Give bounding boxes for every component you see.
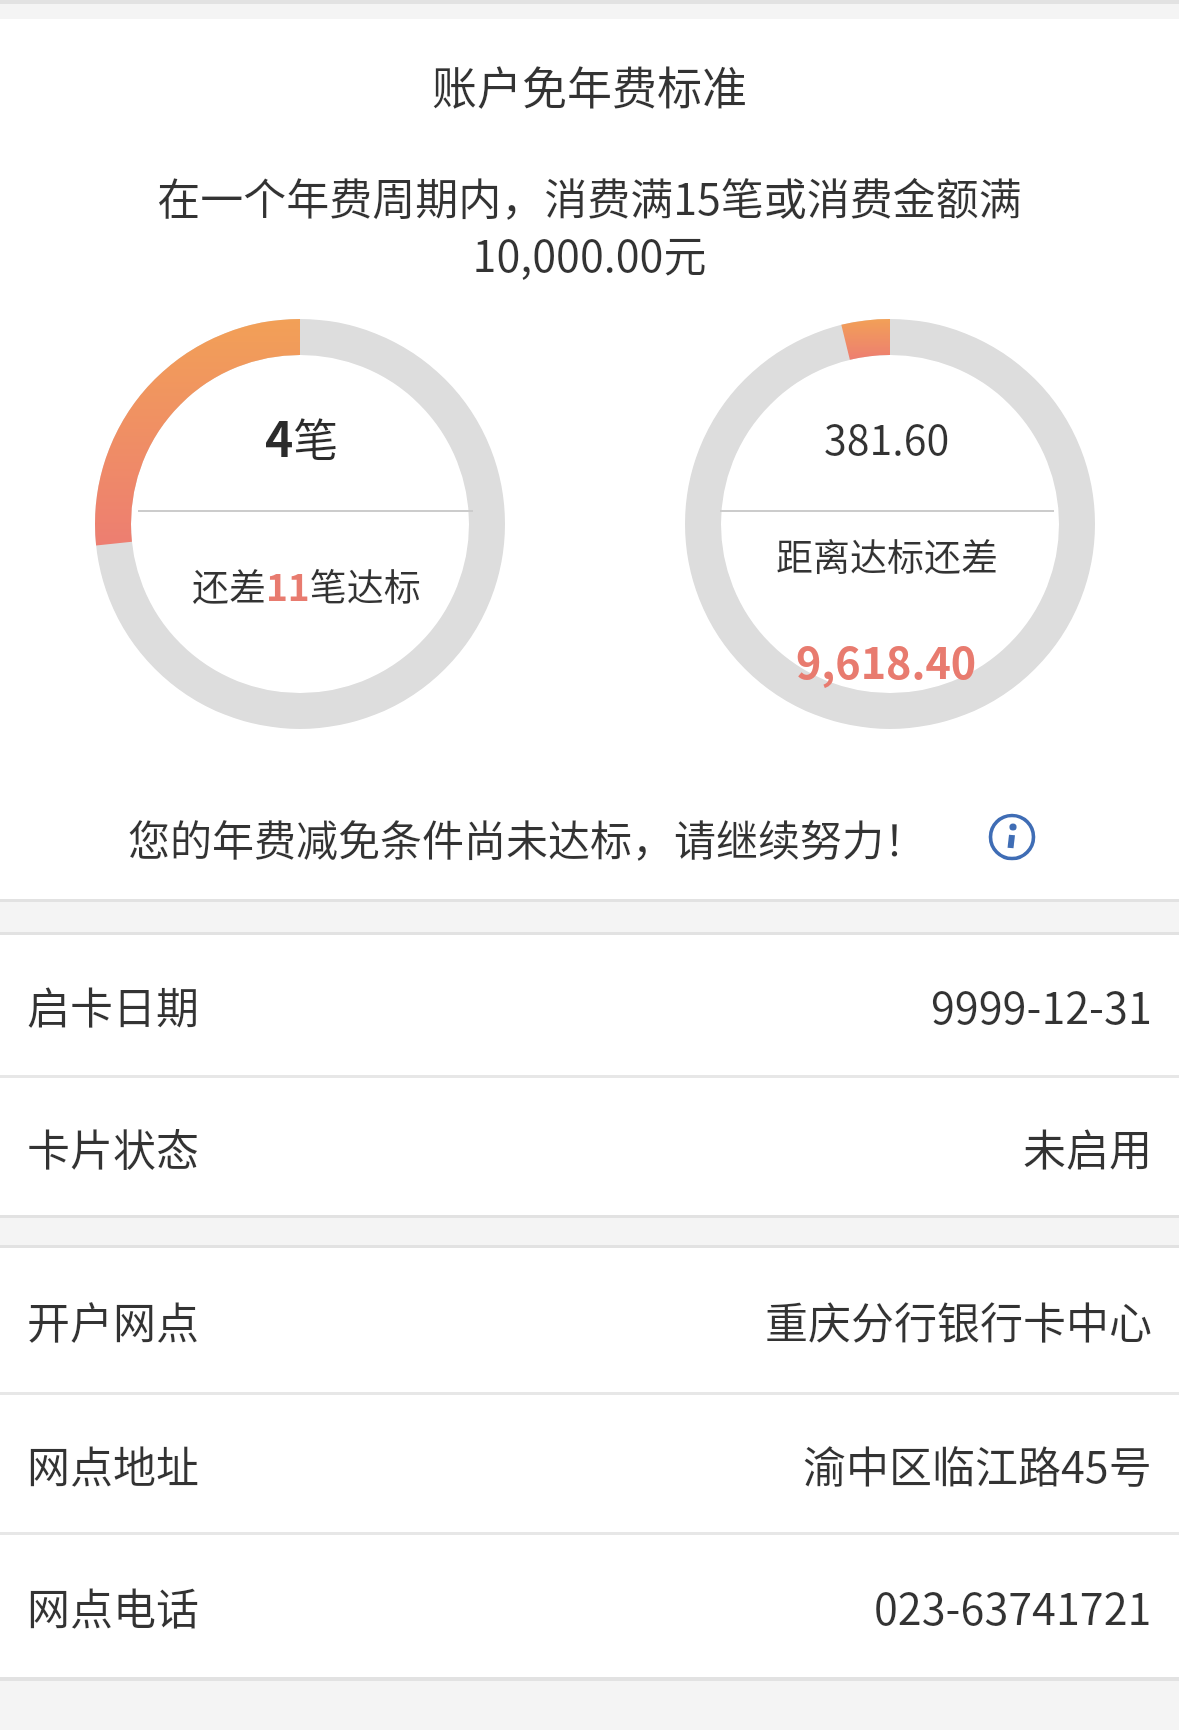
- staticText: 启卡日期: [27, 974, 199, 1036]
- staticText: 渝中区临江路45号: [803, 1433, 1152, 1495]
- staticText: 您的年费减免条件尚未达标，请继续努力！: [128, 807, 927, 868]
- staticText: 9,618.40: [796, 629, 977, 691]
- staticText: 9999-12-31: [931, 974, 1152, 1036]
- staticText: 未启用: [1023, 1116, 1152, 1178]
- staticText: 距离达标还差: [776, 528, 998, 582]
- button[interactable]: 网点地址: [0, 1395, 1179, 1532]
- button[interactable]: 网点电话: [0, 1535, 1179, 1677]
- button[interactable]: 卡片状态: [0, 1078, 1179, 1215]
- staticText: 网点地址: [27, 1433, 199, 1495]
- staticText: 卡片状态: [27, 1116, 199, 1178]
- staticText: 账户免年费标准: [432, 53, 748, 118]
- staticText: 在一个年费周期内，消费满15笔或消费金额满 10,000.00元: [157, 165, 1022, 284]
- staticText: 4笔: [265, 401, 339, 471]
- staticText: 重庆分行银行卡中心: [765, 1289, 1152, 1351]
- staticText: 开户网点: [27, 1289, 199, 1351]
- staticText: 381.60: [824, 407, 950, 466]
- button[interactable]: [982, 807, 1042, 867]
- staticText: 网点电话: [27, 1575, 199, 1637]
- staticText: 023-63741721: [874, 1575, 1152, 1637]
- button[interactable]: 启卡日期: [0, 935, 1179, 1075]
- button[interactable]: 开户网点: [0, 1248, 1179, 1392]
- staticText: 还差11笔达标: [192, 558, 421, 612]
